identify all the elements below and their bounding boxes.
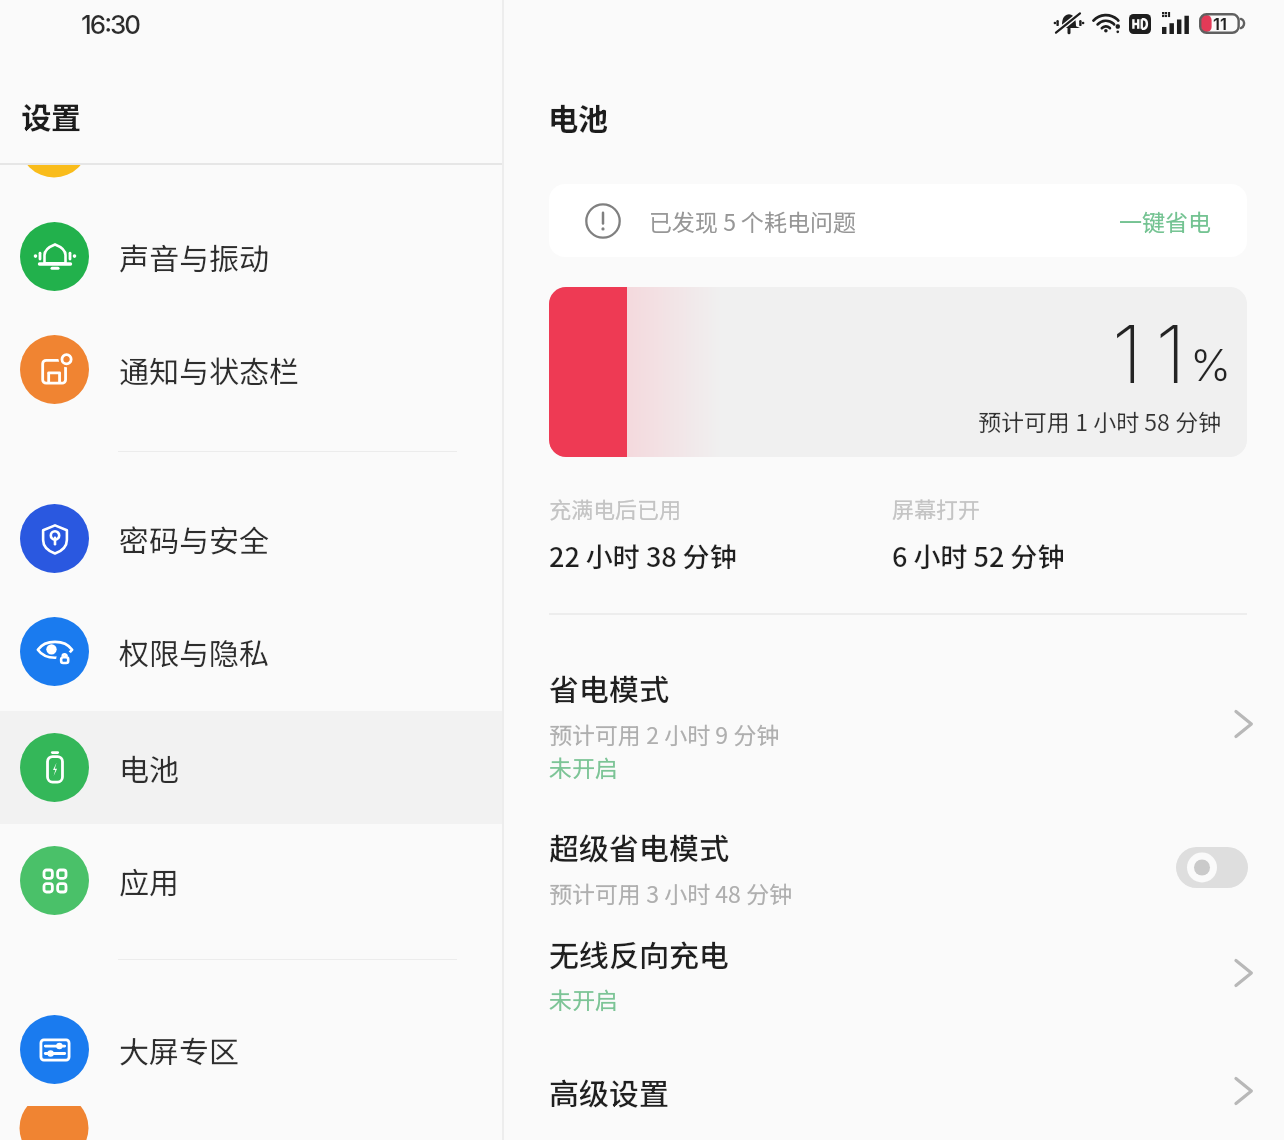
- button[interactable]: 声音与振动: [0, 200, 502, 313]
- button[interactable]: 无线反向充电: [504, 918, 1284, 1028]
- other: Silent mode: [1054, 12, 1084, 35]
- staticText: 电池: [548, 95, 608, 138]
- staticText: 无线反向充电: [549, 932, 729, 975]
- button[interactable]: 省电模式: [504, 659, 1284, 789]
- button[interactable]: 通知与状态栏: [0, 313, 502, 426]
- staticText: 未开启: [549, 982, 618, 1015]
- staticText: %: [1190, 338, 1232, 391]
- other: Wi-Fi: [1094, 12, 1121, 34]
- other: 省电模式: [1232, 709, 1254, 739]
- staticText: 一键省电: [1119, 204, 1211, 237]
- staticText: 预计可用 1 小时 58 分钟: [978, 404, 1221, 437]
- button[interactable]: 权限与隐私: [0, 595, 502, 708]
- staticText: 充满电后已用: [549, 492, 682, 524]
- other: 无线反向充电: [1232, 958, 1254, 988]
- staticText: 预计可用 3 小时 48 分钟: [549, 876, 792, 909]
- staticText: 省电模式: [549, 666, 669, 709]
- other: HD calling: [1129, 14, 1151, 34]
- staticText: 设置: [21, 94, 81, 137]
- staticText: 6 小时 52 分钟: [892, 536, 1065, 575]
- staticText: 权限与隐私: [119, 630, 269, 673]
- staticText: 超级省电模式: [549, 825, 729, 868]
- staticText: 16:30: [81, 9, 140, 40]
- staticText: 大屏专区: [119, 1028, 239, 1071]
- staticText: 11: [1213, 14, 1227, 33]
- other: 高级设置: [1232, 1076, 1254, 1106]
- button[interactable]: 应用: [0, 824, 502, 937]
- button[interactable]: 高级设置: [504, 1051, 1284, 1131]
- button[interactable]: 电池: [0, 711, 502, 824]
- button[interactable]: 一键省电: [1115, 196, 1215, 245]
- staticText: 高级设置: [549, 1070, 669, 1113]
- staticText: 11: [1112, 305, 1199, 402]
- button[interactable]: 大屏专区: [0, 993, 502, 1106]
- staticText: 22 小时 38 分钟: [549, 536, 737, 575]
- staticText: 密码与安全: [119, 517, 269, 560]
- other: Mobile signal: [1162, 12, 1189, 34]
- staticText: 已发现 5 个耗电问题: [649, 204, 857, 237]
- button[interactable]: 超级省电模式: [504, 812, 1284, 922]
- staticText: 应用: [119, 859, 179, 902]
- button[interactable]: 已发现 5 个耗电问题: [549, 184, 1247, 257]
- staticText: 屏幕打开: [892, 492, 981, 524]
- staticText: 声音与振动: [119, 235, 269, 278]
- staticText: 预计可用 2 小时 9 分钟: [549, 717, 780, 750]
- button[interactable]: Toggle 超级省电模式: [1176, 847, 1248, 888]
- other: Battery 11 percent: [1199, 13, 1242, 34]
- staticText: 电池: [119, 746, 179, 789]
- staticText: 通知与状态栏: [119, 348, 299, 391]
- button[interactable]: 密码与安全: [0, 482, 502, 595]
- staticText: 未开启: [549, 750, 618, 783]
